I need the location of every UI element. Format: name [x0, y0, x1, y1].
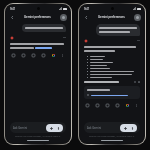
button[interactable]: Back [83, 14, 90, 21]
button[interactable]: Add [48, 125, 54, 131]
staticText: Gemini can make mistakes, so double-chec… [15, 135, 61, 138]
button[interactable]: Copy [30, 52, 36, 58]
button[interactable]: Share [40, 52, 46, 58]
button[interactable] [84, 86, 140, 99]
button[interactable]: Ask Gemini [10, 122, 66, 133]
staticText: Gemini preferences [24, 15, 51, 19]
staticText: Ask Gemini [13, 126, 28, 130]
button[interactable]: Ask Gemini [84, 122, 140, 133]
button[interactable]: More options [60, 53, 65, 58]
button[interactable]: Voice input [129, 125, 135, 131]
staticText: Gemini preferences [98, 15, 125, 19]
staticText: Gemini can make mistakes, so double-chec… [89, 135, 135, 138]
staticText: 9:41 [84, 7, 90, 11]
button[interactable]: Account [134, 14, 141, 21]
button[interactable]: Copy [104, 102, 110, 108]
staticText: Ask Gemini [87, 126, 102, 130]
button[interactable]: Account [60, 14, 67, 21]
button[interactable]: Google Search [50, 52, 56, 58]
button[interactable]: Thumb down [94, 102, 100, 108]
button[interactable]: Back [9, 14, 16, 21]
button[interactable]: Thumb up [10, 52, 16, 58]
button[interactable] [22, 24, 66, 32]
staticText: 9:41 [10, 7, 16, 11]
button[interactable] [96, 24, 140, 36]
button[interactable]: More options [134, 103, 139, 108]
button[interactable]: Add [122, 125, 128, 131]
button[interactable]: Thumb down [20, 52, 26, 58]
button[interactable]: Voice input [55, 125, 61, 131]
button[interactable]: Thumb up [84, 102, 90, 108]
button[interactable]: Share [114, 102, 120, 108]
button[interactable]: Google Search [124, 102, 130, 108]
